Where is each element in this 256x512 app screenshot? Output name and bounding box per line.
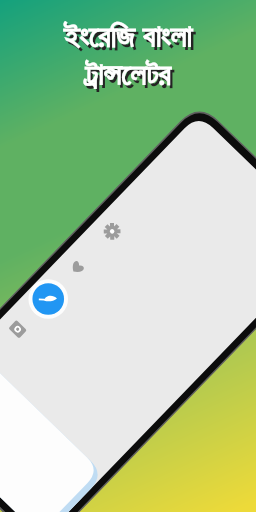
- button[interactable]: Favourites: [117, 444, 139, 466]
